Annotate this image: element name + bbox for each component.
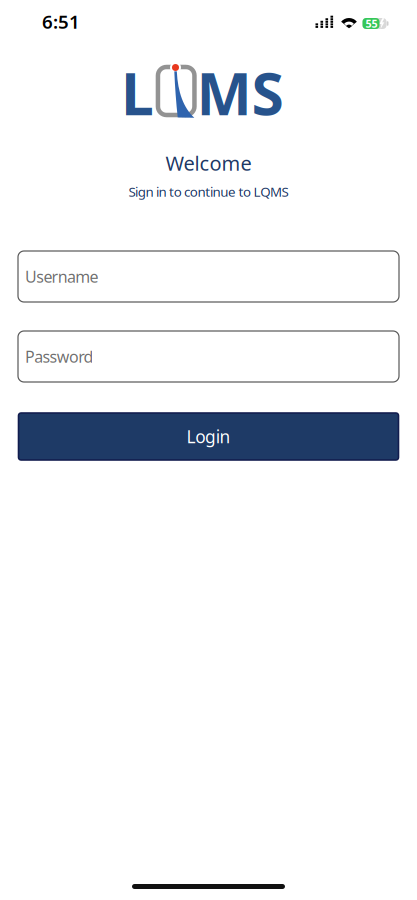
button[interactable]: Login	[18, 413, 398, 460]
button[interactable]: Password	[18, 331, 399, 382]
staticText: 6:51	[42, 9, 80, 34]
button[interactable]: Username	[18, 251, 399, 302]
staticText: Welcome	[165, 150, 251, 176]
staticText: Login	[187, 425, 230, 448]
staticText: M	[196, 53, 251, 131]
staticText: Username	[25, 266, 98, 287]
staticText: Password	[25, 346, 93, 367]
staticText: 55	[365, 16, 377, 31]
staticText: L	[121, 53, 154, 131]
staticText: Sign in to continue to LQMS	[128, 183, 289, 200]
staticText: S	[251, 53, 283, 131]
